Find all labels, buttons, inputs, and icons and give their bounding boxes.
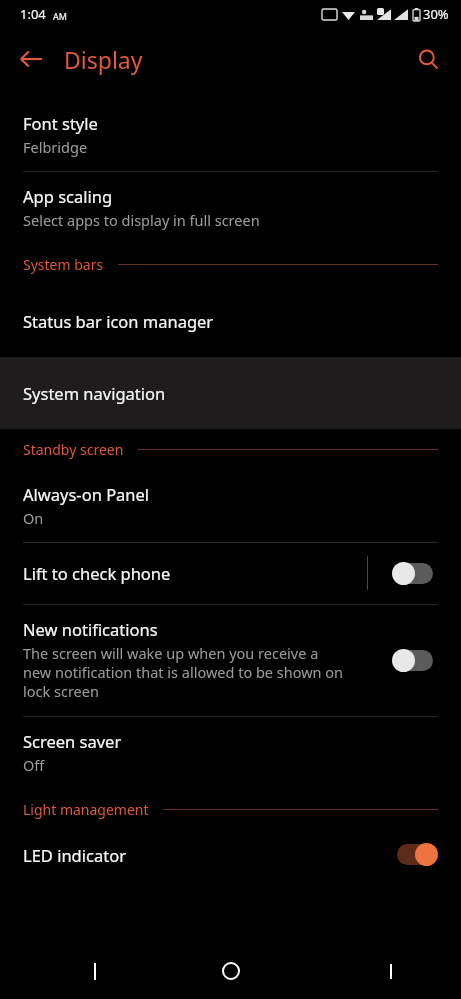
staticText: System navigation [23, 382, 166, 404]
staticText: Light management [23, 800, 149, 819]
staticText: Standby screen [23, 440, 124, 459]
button[interactable]: Back [10, 38, 52, 80]
staticText: Status bar icon manager [23, 310, 214, 332]
button[interactable]: Always-on Panel [0, 470, 461, 542]
button[interactable]: Screen saver [0, 717, 461, 789]
staticText: Lift to check phone [23, 562, 171, 584]
button[interactable]: App scaling [0, 172, 461, 244]
button[interactable]: System navigation [0, 357, 461, 429]
staticText: Select apps to display in full screen [23, 210, 260, 230]
button[interactable]: Font style [0, 99, 461, 171]
staticText: System bars [23, 255, 104, 274]
staticText: Screen saver [23, 730, 122, 752]
staticText: Display [64, 44, 143, 75]
staticText: The screen will wake up when you receive… [23, 643, 344, 702]
button[interactable]: Home [196, 943, 266, 999]
button[interactable]: Search [407, 38, 449, 80]
staticText: 1:04 [20, 5, 46, 23]
staticText: Font style [23, 112, 98, 134]
button[interactable]: New notifications [0, 605, 461, 716]
staticText: Felbridge [23, 137, 88, 157]
button[interactable]: Toggle [392, 843, 438, 866]
button[interactable]: Status bar icon manager [0, 285, 461, 357]
staticText: New notifications [23, 618, 158, 640]
staticText: Always-on Panel [23, 483, 150, 505]
staticText: On [23, 508, 44, 528]
button[interactable]: Lift to check phone [0, 543, 461, 604]
button[interactable]: Toggle [392, 562, 438, 585]
staticText: Off [23, 755, 45, 775]
staticText: LED indicator [23, 844, 126, 866]
staticText: AM [53, 10, 67, 22]
staticText: 30% [423, 5, 449, 23]
button[interactable]: LED indicator [0, 830, 461, 880]
button[interactable]: Toggle [392, 649, 438, 672]
staticText: App scaling [23, 185, 113, 207]
